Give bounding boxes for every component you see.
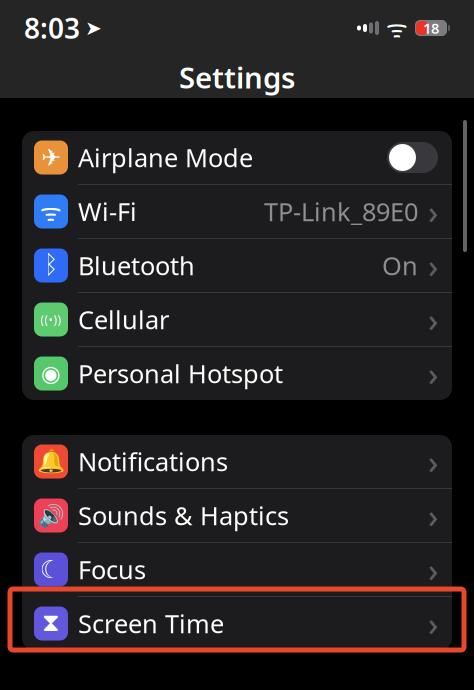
staticText: Bluetooth: [78, 249, 195, 282]
staticText: Focus: [78, 553, 146, 586]
staticText: Notifications: [78, 445, 228, 478]
staticText: ➤: [85, 17, 102, 39]
staticText: ◉: [41, 361, 61, 386]
staticText: 8:03: [24, 9, 80, 47]
staticText: ›: [428, 298, 438, 341]
staticText: 🔔: [37, 449, 65, 474]
staticText: TP-Link_89E0: [264, 195, 418, 228]
button[interactable]: ᯤ: [22, 185, 452, 238]
staticText: Settings: [179, 57, 295, 96]
staticText: ›: [428, 548, 438, 591]
staticText: 🔊: [37, 503, 64, 528]
staticText: Wi-Fi: [78, 195, 137, 228]
staticText: ›: [428, 352, 438, 395]
staticText: ᛒ: [43, 253, 58, 278]
staticText: ((•)): [40, 311, 61, 327]
staticText: ›: [428, 494, 438, 537]
staticText: On: [382, 249, 418, 282]
staticText: Screen Time: [78, 607, 224, 640]
staticText: ›: [428, 602, 438, 645]
staticText: ›: [428, 440, 438, 483]
staticText: 18: [423, 18, 439, 38]
staticText: Airplane Mode: [78, 141, 253, 174]
staticText: Sounds & Haptics: [78, 499, 289, 532]
staticText: ᯤ: [40, 196, 62, 227]
staticText: Personal Hotspot: [78, 357, 283, 390]
button[interactable]: ⧗: [22, 597, 452, 650]
staticText: Cellular: [78, 303, 169, 336]
staticText: ✈: [41, 144, 61, 171]
button[interactable]: ✈: [22, 131, 452, 184]
button[interactable]: ◉: [22, 347, 452, 400]
button[interactable]: ☾: [22, 543, 452, 596]
staticText: ⧗: [42, 611, 60, 636]
button[interactable]: ((•)): [22, 293, 452, 346]
staticText: ›: [428, 190, 438, 233]
staticText: ☾: [39, 555, 62, 584]
button[interactable]: 🔊: [22, 489, 452, 542]
staticText: ›: [428, 244, 438, 287]
button[interactable]: ᛒ: [22, 239, 452, 292]
button[interactable]: 🔔: [22, 435, 452, 488]
staticText: ᯤ: [386, 12, 408, 44]
